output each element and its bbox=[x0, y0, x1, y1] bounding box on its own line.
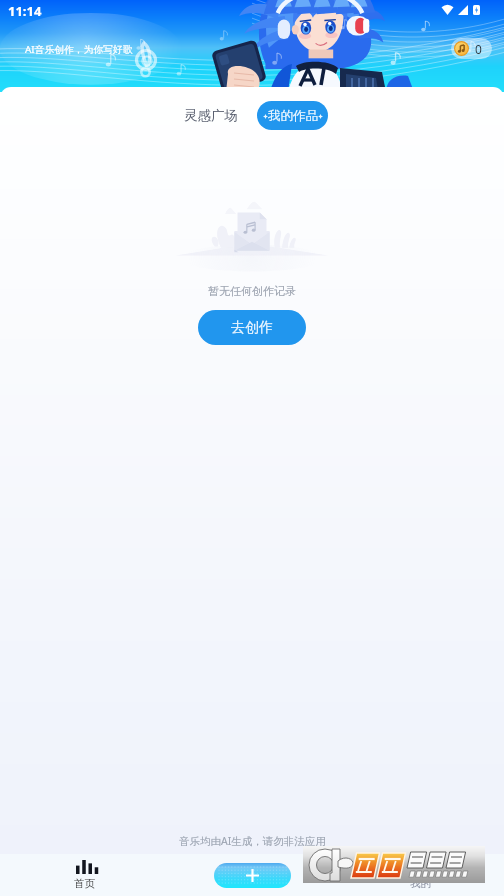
button[interactable]: 首页 bbox=[0, 854, 168, 896]
button[interactable]: Coins bbox=[451, 38, 492, 59]
staticText: 去创作 bbox=[231, 319, 273, 337]
button[interactable]: 去创作 bbox=[198, 310, 306, 345]
button[interactable]: 我的 bbox=[336, 854, 504, 896]
button[interactable]: Create bbox=[214, 863, 291, 888]
staticText: 我的 bbox=[410, 877, 431, 890]
button[interactable]: 灵感广场 bbox=[176, 100, 246, 131]
button[interactable]: 我的作品 bbox=[257, 101, 328, 130]
staticText: 我的作品 bbox=[268, 108, 318, 124]
staticText: 灵感广场 bbox=[184, 107, 238, 124]
staticText: 首页 bbox=[74, 877, 95, 890]
staticText: 暂无任何创作记录 bbox=[208, 284, 296, 298]
staticText: 0 bbox=[475, 41, 482, 57]
staticText: 音乐均由AI生成，请勿非法应用 bbox=[179, 834, 326, 848]
staticText: AI音乐创作，为你写好歌 bbox=[25, 43, 133, 56]
staticText: 11:14 bbox=[8, 2, 42, 20]
